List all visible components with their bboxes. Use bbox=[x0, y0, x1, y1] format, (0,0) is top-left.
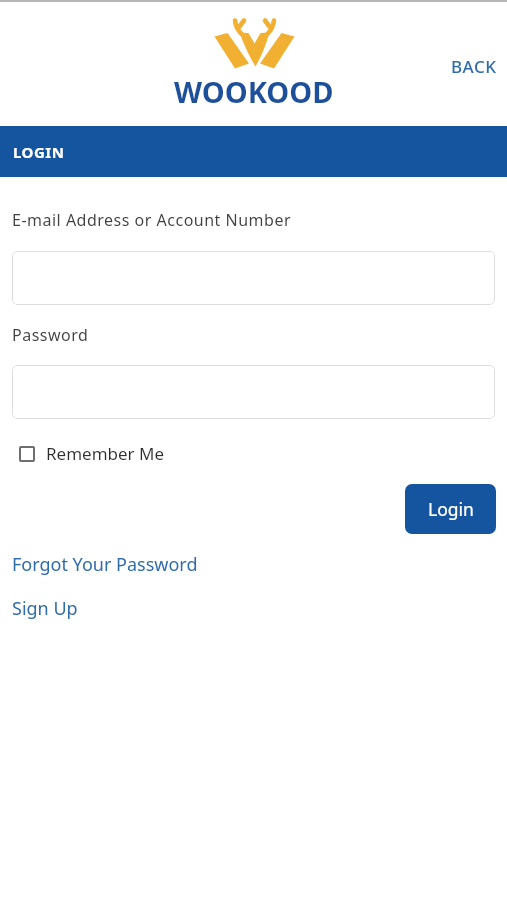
staticText: LOGIN bbox=[13, 142, 65, 162]
staticText: Sign Up bbox=[12, 596, 78, 621]
button[interactable]: Remember Me bbox=[19, 442, 165, 465]
staticText: Password bbox=[12, 324, 89, 346]
button[interactable] bbox=[12, 365, 495, 419]
staticText: E-mail Address or Account Number bbox=[12, 209, 292, 231]
button[interactable]: Sign Up bbox=[12, 596, 78, 621]
button[interactable]: BACK bbox=[444, 52, 504, 80]
staticText: Forgot Your Password bbox=[12, 552, 198, 577]
staticText: BACK bbox=[451, 55, 497, 78]
button[interactable]: Forgot Your Password bbox=[12, 552, 198, 577]
staticText: Login bbox=[428, 497, 474, 521]
button[interactable] bbox=[12, 251, 495, 305]
staticText: WOOKOOD bbox=[174, 72, 334, 111]
staticText: Remember Me bbox=[46, 442, 165, 465]
button[interactable]: Login bbox=[405, 484, 496, 534]
